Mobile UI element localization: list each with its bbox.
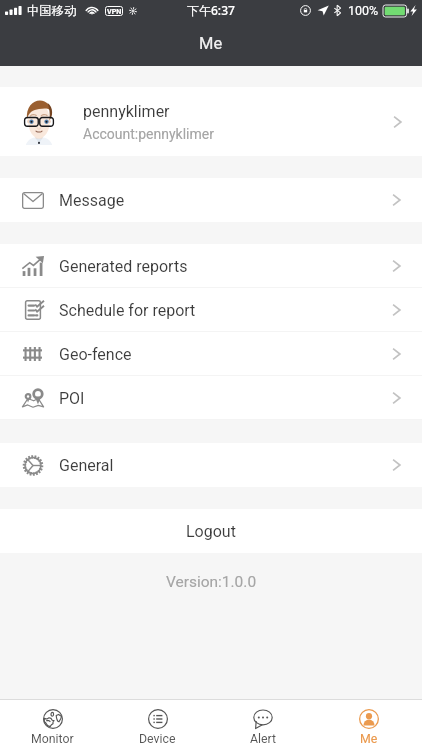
other: Open	[392, 347, 401, 361]
other: Open	[392, 391, 401, 405]
staticText: Message	[59, 191, 392, 210]
staticText: Account:pennyklimer	[83, 126, 214, 142]
button[interactable]: pennyklimer	[0, 87, 422, 156]
staticText: Monitor	[31, 732, 74, 746]
other: Open	[392, 193, 401, 207]
staticText: Generated reports	[59, 257, 392, 276]
staticText: Alert	[250, 732, 277, 746]
staticText: pennyklimer	[83, 102, 170, 121]
button[interactable]: Me	[316, 700, 422, 750]
other: Open	[392, 259, 401, 273]
staticText: POI	[59, 389, 392, 408]
other: Open	[392, 458, 401, 472]
staticText: Version:1.0.0	[0, 573, 422, 591]
staticText: Device	[139, 732, 176, 746]
staticText: Geo-fence	[59, 345, 392, 364]
staticText: Me	[360, 732, 378, 746]
button[interactable]: POI	[0, 376, 422, 420]
button[interactable]: Alert	[210, 700, 316, 750]
other: Open	[392, 303, 401, 317]
staticText: General	[59, 456, 392, 475]
button[interactable]: Device	[105, 700, 210, 750]
other: Open	[393, 115, 402, 129]
button[interactable]: Generated reports	[0, 244, 422, 288]
button[interactable]: Schedule for report	[0, 288, 422, 332]
staticText: 下午6:37	[187, 2, 235, 18]
button[interactable]: Message	[0, 178, 422, 222]
staticText: 中国移动	[27, 3, 77, 18]
button[interactable]: General	[0, 443, 422, 487]
button[interactable]: Geo-fence	[0, 332, 422, 376]
staticText: Logout	[186, 522, 236, 541]
button[interactable]: Monitor	[0, 700, 105, 750]
staticText: Me	[199, 34, 223, 53]
button[interactable]: Logout	[0, 509, 422, 553]
staticText: 100%	[348, 3, 379, 18]
staticText: Schedule for report	[59, 301, 392, 320]
staticText: VPN	[107, 7, 122, 15]
